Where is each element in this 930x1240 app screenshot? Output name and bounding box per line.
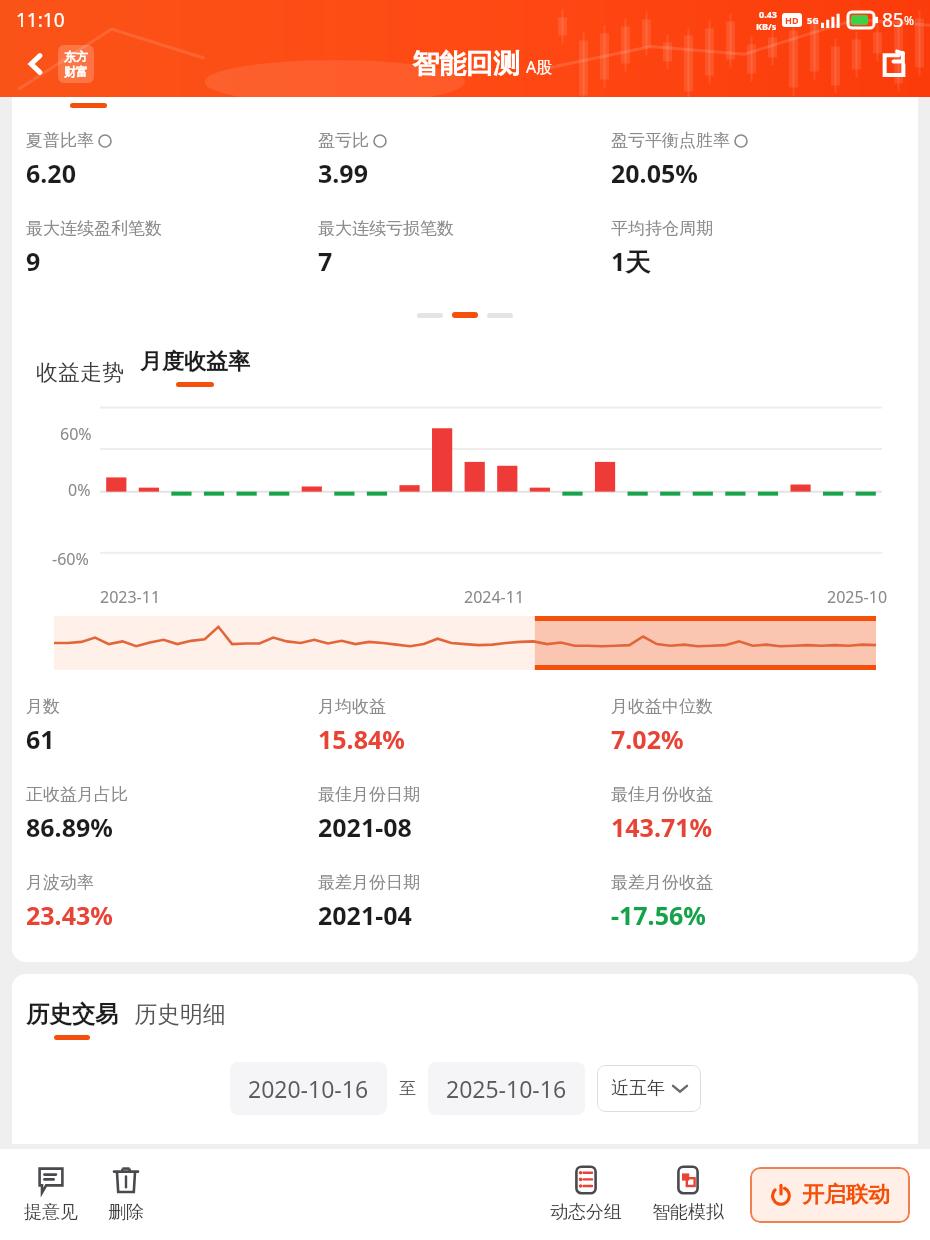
button[interactable]: 历史明细 [134, 1000, 226, 1029]
button[interactable]: 月度收益率 [140, 348, 250, 387]
staticText: 7 [318, 244, 333, 278]
staticText: 2025-10 [827, 586, 888, 608]
staticText: 盈亏平衡点胜率 [611, 130, 730, 151]
staticText: 最佳月份收益 [611, 784, 713, 805]
staticText: KB/s [756, 20, 777, 32]
staticText: 最差月份收益 [611, 872, 713, 893]
staticText: 月数 [26, 696, 60, 717]
staticText: 2021-08 [318, 810, 412, 844]
staticText: 月波动率 [26, 872, 94, 893]
staticText: 夏普比率 [26, 130, 94, 151]
button[interactable]: Back [14, 42, 58, 86]
staticText: 动态分组 [550, 1201, 622, 1224]
button[interactable]: 智能模拟 [648, 1165, 728, 1224]
staticText: 至 [399, 1078, 416, 1099]
staticText: 7.02% [611, 722, 684, 756]
staticText: 月度收益率 [140, 348, 250, 376]
staticText: A股 [526, 56, 553, 78]
button[interactable]: 提意见 [20, 1165, 82, 1224]
staticText: 0.43 [759, 8, 777, 20]
staticText: 收益走势 [36, 359, 124, 387]
button[interactable]: 动态分组 [546, 1165, 626, 1224]
button[interactable]: 2020-10-16 [230, 1062, 387, 1115]
staticText: 最大连续盈利笔数 [26, 218, 162, 239]
button[interactable]: 删除 [104, 1165, 148, 1224]
staticText: HD [785, 14, 799, 26]
staticText: 20.05% [611, 156, 698, 190]
staticText: 月收益中位数 [611, 696, 713, 717]
staticText: % [904, 12, 914, 28]
staticText: 智能模拟 [652, 1201, 724, 1224]
staticText: 0% [68, 479, 91, 501]
staticText: 9 [26, 244, 41, 278]
staticText: 5G [807, 14, 819, 26]
staticText: 2023-11 [100, 586, 161, 608]
button[interactable] [54, 616, 876, 670]
staticText: 61 [26, 722, 55, 756]
staticText: 财富 [64, 64, 88, 79]
button[interactable]: 近五年 [597, 1065, 701, 1112]
staticText: 正收益月占比 [26, 784, 128, 805]
staticText: 历史交易 [26, 1000, 118, 1029]
staticText: 月均收益 [318, 696, 386, 717]
staticText: 最大连续亏损笔数 [318, 218, 454, 239]
staticText: 东方 [64, 49, 88, 64]
staticText: 23.43% [26, 898, 113, 932]
button[interactable]: 开启联动 [750, 1167, 910, 1223]
staticText: -60% [52, 548, 89, 570]
staticText: 提意见 [24, 1201, 78, 1224]
staticText: 2021-04 [318, 898, 412, 932]
button[interactable]: East Money [58, 45, 94, 83]
staticText: 开启联动 [802, 1181, 890, 1209]
button[interactable]: 收益走势 [36, 359, 124, 387]
staticText: 近五年 [611, 1077, 665, 1100]
staticText: 最差月份日期 [318, 872, 420, 893]
staticText: -17.56% [611, 898, 706, 932]
staticText: 最佳月份日期 [318, 784, 420, 805]
staticText: 2020-10-16 [248, 1073, 369, 1104]
button[interactable]: 2025-10-16 [428, 1062, 585, 1115]
staticText: 智能回测 [412, 47, 520, 81]
staticText: 1天 [611, 244, 651, 278]
staticText: 2024-11 [464, 586, 525, 608]
staticText: 删除 [108, 1201, 144, 1224]
staticText: 85 [882, 7, 904, 33]
staticText: 3.99 [318, 156, 368, 190]
staticText: 15.84% [318, 722, 405, 756]
staticText: 60% [60, 423, 92, 445]
staticText: 86.89% [26, 810, 113, 844]
staticText: 平均持仓周期 [611, 218, 713, 239]
staticText: 历史明细 [134, 1000, 226, 1029]
button[interactable]: Share [872, 42, 916, 86]
staticText: 6.20 [26, 156, 76, 190]
staticText: 盈亏比 [318, 130, 369, 151]
staticText: 143.71% [611, 810, 713, 844]
button[interactable]: 历史交易 [26, 1000, 118, 1040]
staticText: 2025-10-16 [446, 1073, 567, 1104]
staticText: 11:10 [16, 7, 65, 33]
